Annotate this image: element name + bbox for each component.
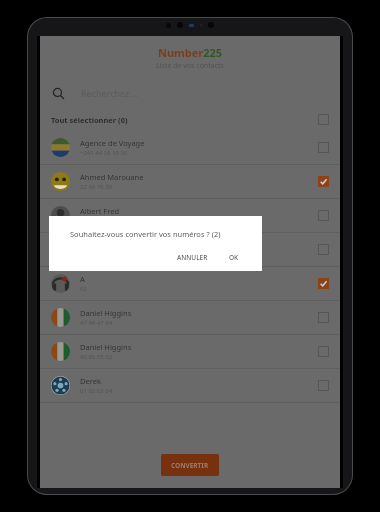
staticText: 01 02 03 04	[80, 387, 113, 395]
button[interactable]: Select	[318, 210, 329, 221]
staticText: Recherchez ...	[81, 87, 139, 99]
button[interactable]: Anna Haro	[40, 233, 340, 266]
staticText: 22 43 76 30	[80, 183, 113, 191]
staticText: 47 44 47 44	[80, 319, 113, 327]
staticText: Daniel Higgins	[80, 342, 132, 352]
button[interactable]: Search	[40, 81, 340, 105]
button[interactable]: Select	[318, 176, 329, 187]
other: Search	[52, 87, 65, 100]
staticText: Ahmed Marouane	[80, 172, 144, 182]
button[interactable]: CONVERTIR	[161, 454, 219, 476]
staticText: Agence de Voyage	[80, 138, 145, 148]
button[interactable]: A	[40, 267, 340, 300]
staticText: Tout sélectionner (0)	[51, 115, 128, 125]
button[interactable]: Select	[318, 346, 329, 357]
button[interactable]: OK	[224, 251, 244, 264]
button[interactable]: Select	[318, 244, 329, 255]
button[interactable]: Ahmed Marouane	[40, 165, 340, 198]
staticText: Souhaitez-vous convertir vos numéros ? (…	[70, 229, 221, 239]
button[interactable]: Agence de Voyage	[40, 131, 340, 164]
staticText: CONVERTIR	[171, 461, 209, 470]
button[interactable]: Daniel Higgins	[40, 335, 340, 368]
button[interactable]: Select	[318, 312, 329, 323]
staticText: Daniel Higgins	[80, 308, 132, 318]
button[interactable]: Daniel Higgins	[40, 301, 340, 334]
button[interactable]: Select	[318, 114, 329, 125]
staticText: OK	[229, 253, 239, 262]
button[interactable]: Tout sélectionner (0)	[40, 110, 340, 129]
staticText: Derek	[80, 376, 101, 386]
button[interactable]: Select	[318, 380, 329, 391]
button[interactable]: Select	[318, 142, 329, 153]
button[interactable]: ANNULER	[172, 251, 213, 264]
button[interactable]: Select	[318, 278, 329, 289]
button[interactable]: Albert Fred	[40, 199, 340, 232]
button[interactable]: Derek	[40, 369, 340, 402]
staticText: 40 85 55 52	[80, 353, 113, 361]
staticText: A	[80, 274, 85, 284]
staticText: ANNULER	[177, 253, 208, 262]
staticText: +241 44 56 10 30	[80, 149, 128, 157]
staticText: Number225	[40, 45, 340, 60]
staticText: Albert Fred	[80, 206, 120, 216]
staticText: 02	[80, 285, 87, 293]
